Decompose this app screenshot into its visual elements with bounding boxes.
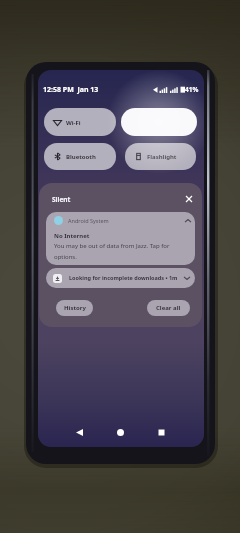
- button[interactable]: Internet: [121, 108, 197, 136]
- staticText: Looking for incomplete downloads • 1m: [69, 274, 178, 281]
- button[interactable]: Bluetooth: [44, 143, 116, 170]
- button[interactable]: Home: [111, 423, 129, 441]
- staticText: 41%: [185, 85, 199, 94]
- button[interactable]: [46, 212, 195, 265]
- button[interactable]: [46, 268, 195, 288]
- button[interactable]: Flashlight: [125, 143, 196, 170]
- staticText: Flashlight: [147, 153, 177, 161]
- staticText: Bluetooth: [66, 153, 96, 161]
- staticText: Wi-Fi: [66, 119, 81, 127]
- button[interactable]: History: [56, 300, 93, 316]
- staticText: Clear all: [156, 304, 181, 312]
- button[interactable]: Recent apps: [152, 423, 170, 441]
- staticText: Android System: [68, 217, 109, 224]
- staticText: Silent: [52, 195, 71, 204]
- button[interactable]: Clear silent notifications: [182, 192, 195, 205]
- staticText: History: [64, 304, 86, 312]
- staticText: 12:58 PM Jan 13: [43, 85, 99, 95]
- button[interactable]: Collapse notification: [182, 215, 193, 226]
- button[interactable]: Wi-Fi: [44, 108, 116, 136]
- staticText: You may be out of data from Jazz. Tap fo…: [54, 242, 170, 261]
- button[interactable]: Back: [70, 423, 88, 441]
- button[interactable]: Clear all: [147, 300, 190, 316]
- button[interactable]: Expand notification: [181, 272, 192, 283]
- staticText: No Internet: [54, 232, 90, 240]
